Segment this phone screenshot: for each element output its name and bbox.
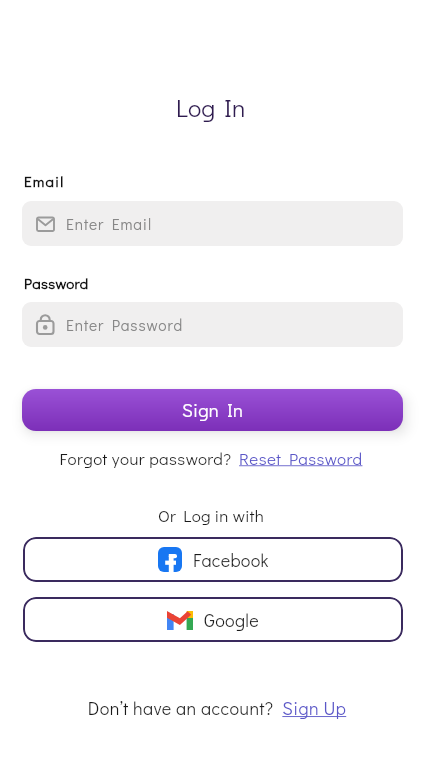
staticText: Password: [24, 273, 89, 293]
button[interactable]: Don’t have an account? Sign Up: [12, 696, 422, 720]
button[interactable]: Google: [23, 597, 403, 642]
staticText: Or Log in with: [0, 504, 422, 526]
staticText: In: [224, 91, 246, 124]
button[interactable]: Enter Password: [22, 302, 403, 347]
staticText: Email: [24, 171, 65, 191]
button[interactable]: Facebook: [23, 537, 403, 582]
staticText: Log: [176, 91, 216, 124]
button[interactable]: Forgot your password? Reset Password: [0, 447, 422, 469]
staticText: Sign In: [182, 398, 244, 422]
staticText: Google: [204, 608, 260, 632]
staticText: Facebook: [193, 548, 269, 572]
button[interactable]: Enter Email: [22, 201, 403, 246]
staticText: Enter Password: [66, 315, 184, 335]
button[interactable]: Sign In: [22, 389, 403, 431]
staticText: Enter Email: [66, 214, 152, 234]
